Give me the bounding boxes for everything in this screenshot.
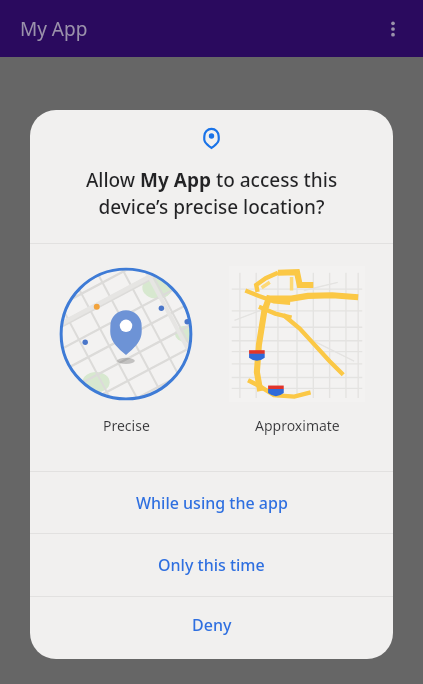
staticText: Only this time [158, 554, 265, 576]
staticText: Approximate [255, 416, 340, 435]
button[interactable]: More options [371, 7, 415, 51]
staticText: Deny [192, 614, 232, 636]
button[interactable]: Precise [51, 244, 201, 435]
button[interactable]: While using the app [30, 472, 393, 533]
staticText: Allow My App to access this device’s pre… [52, 167, 371, 220]
button[interactable]: Approximate [222, 244, 372, 435]
button[interactable]: Deny [30, 597, 393, 653]
staticText: While using the app [136, 492, 288, 514]
button[interactable]: Only this time [30, 534, 393, 596]
staticText: Precise [103, 416, 150, 435]
staticText: My App [20, 16, 88, 42]
